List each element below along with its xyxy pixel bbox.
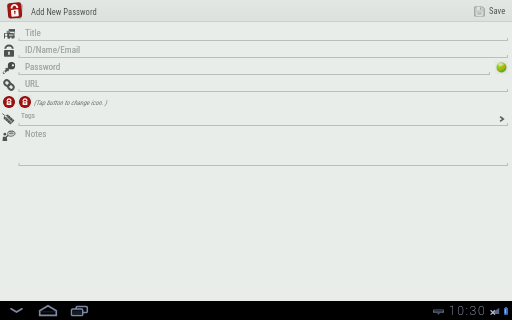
button[interactable]: App icon — [4, 0, 26, 22]
button[interactable]: ID/Name/Email — [0, 42, 512, 59]
staticText: Add New Password — [31, 7, 97, 17]
button[interactable]: Password — [0, 59, 512, 76]
staticText: Notes — [25, 129, 47, 140]
button[interactable]: Recent apps — [69, 301, 90, 320]
staticText: Tags — [21, 111, 35, 120]
button[interactable]: Generate password — [495, 61, 508, 74]
staticText: Title — [25, 28, 41, 39]
button[interactable]: Back — [5, 301, 27, 320]
button[interactable]: Title — [0, 25, 512, 42]
button[interactable]: URL — [0, 76, 512, 93]
button[interactable]: Save — [467, 0, 512, 22]
staticText: 10:30 — [449, 304, 487, 318]
button[interactable]: Tags — [0, 110, 512, 127]
staticText: (Tap button to change icon. ) — [34, 99, 107, 107]
staticText: URL — [25, 79, 40, 90]
button[interactable]: Home — [37, 301, 58, 320]
staticText: Password — [25, 62, 61, 73]
staticText: ID/Name/Email — [25, 45, 81, 56]
button[interactable]: Change icon — [18, 95, 32, 109]
staticText: Save — [489, 6, 506, 16]
button[interactable]: Notes — [0, 127, 512, 167]
